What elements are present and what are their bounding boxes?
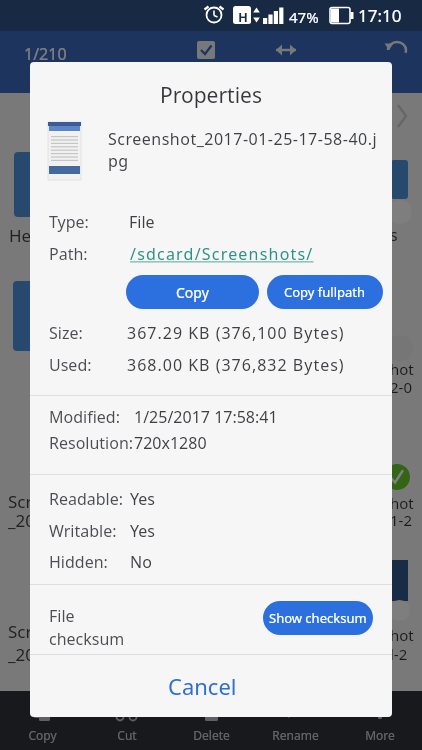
staticText: Used:: [49, 354, 92, 376]
button[interactable]: Copy: [126, 275, 259, 309]
staticText: Scr: [8, 620, 33, 643]
staticText: Hel: [9, 224, 36, 247]
staticText: Cancel: [168, 671, 237, 701]
staticText: Copy fullpath: [284, 283, 366, 301]
staticText: /sdcard/Screenshots/: [130, 243, 314, 265]
staticText: Hidden:: [49, 551, 108, 573]
staticText: Yes: [130, 520, 155, 542]
button[interactable]: Show checksum: [263, 601, 373, 635]
staticText: Cut: [117, 727, 137, 743]
button[interactable]: More: [350, 727, 410, 743]
staticText: Copy: [176, 283, 209, 302]
staticText: l-2: [390, 644, 408, 664]
staticText: Writable:: [49, 520, 117, 542]
staticText: Yes: [130, 488, 155, 510]
staticText: s: [390, 224, 398, 246]
staticText: Delete: [193, 727, 230, 743]
button[interactable]: /sdcard/Screenshots/: [130, 243, 314, 265]
staticText: 2-0: [390, 377, 412, 397]
staticText: File checksum: [49, 605, 125, 650]
staticText: 1/210: [24, 43, 67, 65]
staticText: 1-2: [390, 510, 412, 530]
staticText: Type:: [49, 211, 89, 233]
button[interactable]: Cancel: [30, 666, 383, 706]
button[interactable]: Rename: [265, 727, 325, 743]
button[interactable]: Copy fullpath: [267, 275, 383, 309]
staticText: hot: [390, 493, 414, 513]
staticText: Properties: [160, 81, 262, 110]
staticText: Modified:: [49, 406, 120, 428]
button[interactable]: Cut: [97, 727, 157, 743]
button[interactable]: Delete: [181, 727, 241, 743]
staticText: 1/25/2017 17:58:41: [134, 406, 278, 428]
staticText: Screenshot_2017-01-25-17-58-40.j pg: [108, 128, 378, 172]
staticText: Copy: [28, 727, 57, 743]
staticText: Rename: [272, 727, 319, 743]
staticText: More: [365, 727, 395, 743]
staticText: Path:: [49, 243, 88, 265]
staticText: No: [130, 551, 152, 573]
staticText: Readable:: [49, 488, 124, 510]
staticText: hot: [390, 359, 414, 379]
staticText: 47%: [289, 7, 319, 27]
staticText: 368.00 KB (376,832 Bytes): [127, 354, 345, 376]
staticText: _20: [8, 643, 35, 666]
staticText: 17:10: [358, 4, 402, 27]
staticText: H: [238, 8, 248, 26]
staticText: File: [129, 211, 155, 233]
staticText: hot: [390, 625, 414, 645]
staticText: Scr: [8, 490, 33, 513]
staticText: 367.29 KB (376,100 Bytes): [127, 322, 345, 344]
staticText: Size:: [49, 322, 83, 344]
staticText: _20: [8, 509, 35, 532]
staticText: Resolution:: [49, 432, 134, 454]
staticText: Show checksum: [269, 609, 367, 627]
staticText: 720x1280: [134, 432, 207, 454]
button[interactable]: Copy: [12, 727, 72, 743]
